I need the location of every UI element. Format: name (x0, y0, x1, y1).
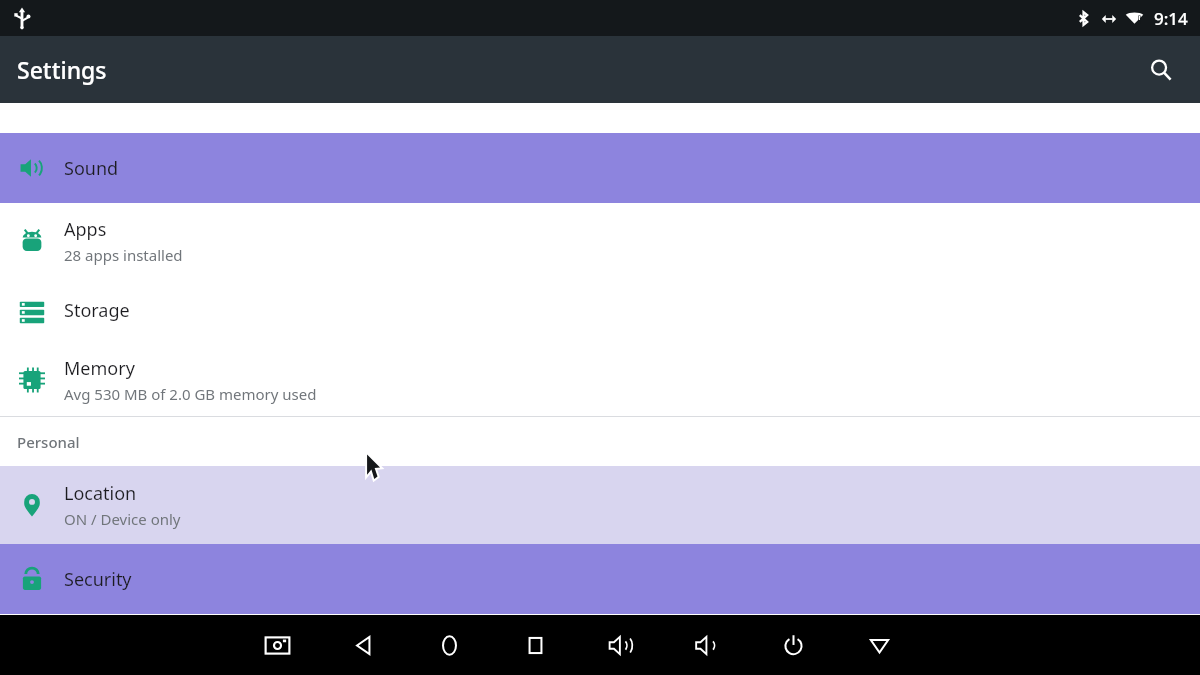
staticText: Storage (64, 298, 130, 323)
button[interactable]: Back (341, 623, 385, 667)
button[interactable]: Hide (857, 623, 901, 667)
staticText: Avg 530 MB of 2.0 GB memory used (64, 384, 317, 404)
staticText: 28 apps installed (64, 245, 183, 265)
button[interactable]: Apps (0, 203, 1200, 278)
button[interactable]: Location (0, 466, 1200, 544)
button[interactable]: Recents (513, 623, 557, 667)
button[interactable]: Volume down (685, 623, 729, 667)
button[interactable]: Volume up (599, 623, 643, 667)
staticText: Location (64, 481, 137, 506)
staticText: Memory (64, 356, 135, 381)
staticText: Personal (17, 432, 80, 452)
button[interactable]: Home (427, 623, 471, 667)
button[interactable]: Search (1139, 48, 1183, 92)
staticText: ON / Device only (64, 509, 181, 529)
staticText: Apps (64, 217, 107, 242)
button[interactable]: Storage (0, 278, 1200, 343)
button[interactable]: Security (0, 544, 1200, 614)
staticText: Sound (64, 156, 119, 181)
staticText: Settings (17, 54, 107, 85)
button[interactable]: Sound (0, 133, 1200, 203)
button[interactable]: Power (771, 623, 815, 667)
staticText: Security (64, 567, 132, 592)
staticText: 9:14 (1154, 7, 1188, 30)
button[interactable]: Memory (0, 343, 1200, 416)
button[interactable]: Screenshot (255, 623, 299, 667)
